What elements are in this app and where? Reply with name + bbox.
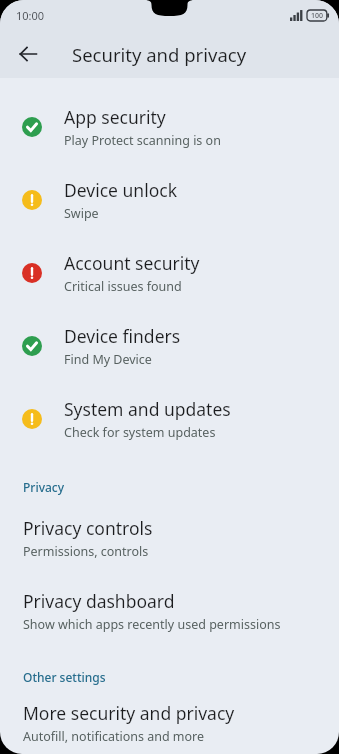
staticText: Show which apps recently used permission… [23,616,281,633]
staticText: Account security [64,251,200,275]
staticText: Privacy controls [23,516,153,540]
staticText: Privacy [23,479,65,495]
staticText: Play Protect scanning is on [64,132,221,149]
button[interactable]: Privacy controls [0,501,339,574]
staticText: Check for system updates [64,424,216,441]
button[interactable]: Device unlock [0,163,339,236]
button[interactable]: Privacy dashboard [0,574,339,647]
staticText: Security and privacy [72,42,247,67]
staticText: Permissions, controls [23,543,149,560]
button[interactable]: App security [0,90,339,163]
staticText: Privacy dashboard [23,589,175,613]
button[interactable]: Back [10,36,46,72]
staticText: Autofill, notifications and more [23,728,205,745]
staticText: More security and privacy [23,701,235,725]
button[interactable]: System and updates [0,382,339,455]
staticText: Other settings [23,669,106,685]
staticText: 100 [311,11,324,21]
staticText: Device unlock [64,178,177,202]
staticText: App security [64,105,166,129]
button[interactable]: Device finders [0,309,339,382]
staticText: Find My Device [64,351,152,368]
staticText: Device finders [64,324,181,348]
button[interactable]: More security and privacy [0,691,339,754]
staticText: Critical issues found [64,278,182,295]
staticText: 10:00 [16,8,45,23]
button[interactable]: Account security [0,236,339,309]
staticText: System and updates [64,397,231,421]
staticText: Swipe [64,205,99,222]
